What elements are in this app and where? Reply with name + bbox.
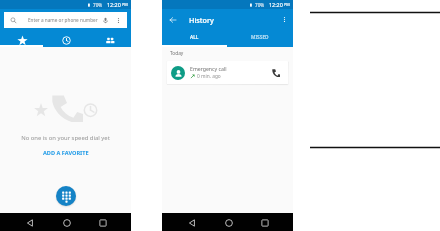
staticText: 12:20 <box>107 1 121 8</box>
button[interactable]: Recents <box>43 28 87 47</box>
staticText: 0 min. ago <box>197 73 221 80</box>
button[interactable]: Speed dial <box>0 28 43 47</box>
button[interactable]: Home <box>56 213 76 231</box>
button[interactable]: Call back <box>267 64 285 82</box>
button[interactable]: Enter a name or phone number <box>4 12 127 28</box>
staticText: 70% <box>255 2 265 8</box>
staticText: 70% <box>93 2 103 8</box>
button[interactable]: ALL <box>162 30 227 47</box>
button[interactable]: Back <box>181 213 201 231</box>
staticText: ALL <box>190 34 199 41</box>
button[interactable]: Back <box>19 213 39 231</box>
staticText: No one is on your speed dial yet <box>21 134 110 142</box>
staticText: ADD A FAVORITE <box>43 149 89 157</box>
button[interactable]: Navigate up <box>162 9 184 30</box>
staticText: History <box>189 15 214 25</box>
button[interactable]: Emergency call <box>167 61 288 84</box>
staticText: PM <box>122 2 128 7</box>
button[interactable]: MISSED <box>227 30 293 47</box>
staticText: 12:20 <box>269 1 283 8</box>
staticText: Today <box>170 50 184 57</box>
button[interactable]: Home <box>218 213 238 231</box>
button[interactable]: Recent apps <box>92 213 112 231</box>
staticText: Emergency call <box>190 65 227 72</box>
staticText: MISSED <box>251 34 269 41</box>
button[interactable]: Open dialpad <box>56 186 76 206</box>
button[interactable]: ADD A FAVORITE <box>39 147 93 159</box>
button[interactable]: More options <box>275 9 293 30</box>
staticText: PM <box>284 2 290 7</box>
button[interactable]: Contacts <box>87 28 131 47</box>
staticText: Enter a name or phone number <box>28 17 98 23</box>
button[interactable]: Recent apps <box>254 213 274 231</box>
